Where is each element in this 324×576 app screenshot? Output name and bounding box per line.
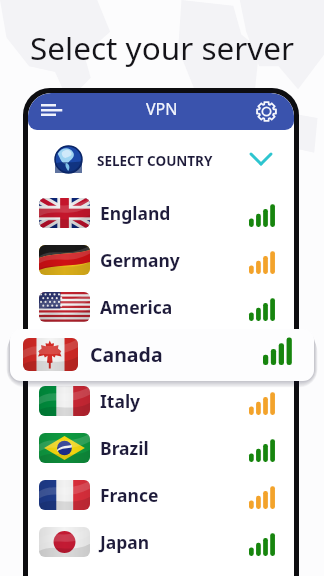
staticText: France xyxy=(100,483,159,507)
staticText: Germany xyxy=(100,248,180,272)
button[interactable]: Settings xyxy=(256,101,277,122)
staticText: Brazil xyxy=(100,436,149,460)
button[interactable]: America xyxy=(28,279,294,326)
staticText: Canada xyxy=(90,341,163,368)
staticText: Japan xyxy=(100,530,150,554)
button[interactable]: Germany xyxy=(28,232,294,279)
staticText: SELECT COUNTRY xyxy=(97,152,213,170)
staticText: England xyxy=(100,201,171,225)
button[interactable]: France xyxy=(28,467,294,514)
button[interactable]: SELECT COUNTRY xyxy=(28,130,294,185)
staticText: Italy xyxy=(100,389,141,413)
staticText: Select your server xyxy=(0,26,324,69)
button[interactable]: England xyxy=(28,185,294,232)
button[interactable]: Brazil xyxy=(28,420,294,467)
button[interactable]: Italy xyxy=(28,373,294,420)
button[interactable]: Menu xyxy=(40,102,64,118)
button[interactable]: Japan xyxy=(28,514,294,561)
staticText: VPN xyxy=(146,98,178,120)
button[interactable]: Canada xyxy=(10,329,314,381)
staticText: America xyxy=(100,295,173,319)
